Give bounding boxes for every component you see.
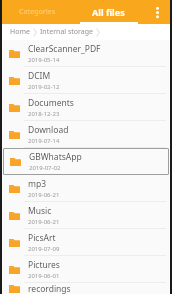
button[interactable]: PicsArt xyxy=(2,229,170,255)
staticText: Music xyxy=(28,205,52,217)
staticText: ClearScanner_PDF xyxy=(28,43,101,55)
button[interactable]: Home xyxy=(8,27,32,37)
staticText: 2019-05-14 xyxy=(28,56,60,64)
staticText: Internal storage xyxy=(40,27,93,37)
staticText: Download xyxy=(28,124,69,136)
button[interactable]: DCIM xyxy=(2,67,170,93)
button[interactable]: mp3 xyxy=(2,175,170,201)
staticText: 2018-12-23 xyxy=(28,110,60,118)
staticText: Home xyxy=(10,27,30,37)
staticText: 2019-02-12 xyxy=(28,83,60,91)
staticText: GBWhatsApp xyxy=(29,151,82,163)
staticText: All files xyxy=(92,6,125,18)
staticText: Pictures xyxy=(28,259,60,271)
staticText: DCIM xyxy=(28,70,51,82)
staticText: Categories xyxy=(19,7,56,17)
button[interactable]: Pictures xyxy=(2,256,170,282)
staticText: 2019-07-14 xyxy=(28,137,60,145)
staticText: 2019-07-09 xyxy=(28,245,60,253)
button[interactable]: Download xyxy=(2,121,170,147)
button[interactable]: Music xyxy=(2,202,170,228)
button[interactable]: recordings xyxy=(2,283,170,294)
staticText: 2019-06-01 xyxy=(28,272,60,280)
staticText: Documents xyxy=(28,97,74,109)
button[interactable]: GBWhatsApp xyxy=(3,148,169,175)
button[interactable]: Documents xyxy=(2,94,170,120)
staticText: 2019-06-21 xyxy=(28,191,60,199)
staticText: recordings xyxy=(28,283,71,294)
button[interactable]: Categories xyxy=(2,0,73,24)
button[interactable]: More options xyxy=(144,0,170,24)
staticText: mp3 xyxy=(28,178,47,190)
staticText: PicsArt xyxy=(28,232,56,244)
button[interactable]: Internal storage xyxy=(38,27,95,37)
staticText: 2019-06-21 xyxy=(28,218,60,226)
button[interactable]: All files xyxy=(73,0,144,24)
button[interactable]: ClearScanner_PDF xyxy=(2,40,170,66)
staticText: 2019-07-02 xyxy=(29,164,61,172)
